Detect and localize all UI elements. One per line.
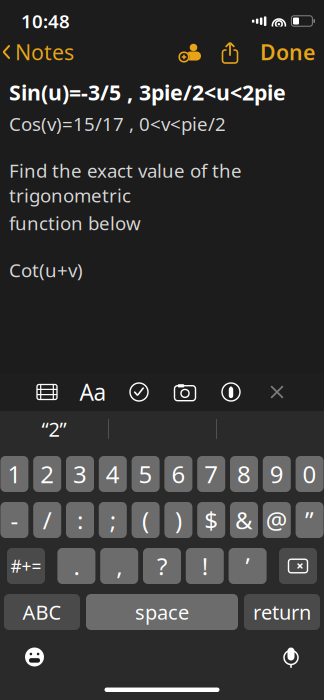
staticText: - <box>10 504 18 536</box>
button[interactable]: 0 <box>296 456 324 492</box>
button[interactable]: Share <box>210 38 250 66</box>
button[interactable]: 6 <box>164 456 192 492</box>
staticText: 9 <box>270 458 284 490</box>
button[interactable]: Markup <box>208 375 254 409</box>
staticText: Sin(u)=-3/5 , 3pie/2<u<2pie <box>9 78 286 106</box>
staticText: 3 <box>73 458 87 490</box>
staticText: 4 <box>106 458 120 490</box>
staticText: Cos(v)=15/17 , 0<v<pie/2 <box>9 111 226 136</box>
button[interactable]: 5 <box>132 456 160 492</box>
button[interactable]: @ <box>263 502 291 538</box>
button[interactable]: ) <box>164 502 192 538</box>
button[interactable]: 8 <box>230 456 258 492</box>
button[interactable]: $ <box>197 502 225 538</box>
button[interactable]: Camera <box>162 375 208 409</box>
button[interactable]: ? <box>143 548 181 584</box>
button[interactable]: , <box>100 548 138 584</box>
button[interactable]: Done <box>250 32 324 72</box>
button[interactable]: Close Keyboard <box>254 375 300 409</box>
staticText: & <box>235 504 253 536</box>
staticText: 8 <box>237 458 251 490</box>
staticText: . <box>73 550 79 582</box>
staticText: 6 <box>171 458 185 490</box>
staticText: 5 <box>139 458 153 490</box>
button[interactable]: 1 <box>0 456 28 492</box>
button[interactable]: Checklist <box>116 375 162 409</box>
staticText: 2 <box>40 458 54 490</box>
staticText: Aa <box>79 377 106 407</box>
button[interactable]: ” <box>296 502 324 538</box>
button[interactable]: Emoji <box>14 636 55 677</box>
staticText: Done <box>260 38 315 66</box>
button[interactable]: 9 <box>263 456 291 492</box>
staticText: ? <box>157 550 167 582</box>
staticText: Notes <box>15 38 74 66</box>
button[interactable]: ! <box>186 548 224 584</box>
staticText: $ <box>204 504 218 536</box>
button[interactable]: #+= <box>7 548 45 584</box>
staticText: Find the exact value of the trigonometri… <box>9 158 242 208</box>
button[interactable]: Insert Table <box>24 375 70 409</box>
button[interactable]: ; <box>99 502 127 538</box>
button[interactable]: Notes <box>0 32 74 72</box>
staticText: space <box>135 599 189 625</box>
staticText: function below <box>9 211 141 235</box>
staticText: ! <box>202 550 208 582</box>
staticText: return <box>253 599 311 625</box>
button[interactable]: Format <box>70 375 116 409</box>
button[interactable]: . <box>57 548 95 584</box>
staticText: ) <box>175 504 182 536</box>
staticText: , <box>116 550 122 582</box>
staticText: #+= <box>10 554 41 577</box>
staticText: 10:48 <box>21 9 70 33</box>
button[interactable]: - <box>0 502 28 538</box>
button[interactable]: ( <box>132 502 160 538</box>
button[interactable]: ’ <box>229 548 267 584</box>
staticText: Cot(u+v) <box>9 257 83 282</box>
button[interactable]: return <box>244 594 320 630</box>
button[interactable]: Add People <box>172 37 210 67</box>
staticText: “2” <box>41 416 66 442</box>
button[interactable]: “2” <box>0 411 108 447</box>
staticText: ( <box>142 504 149 536</box>
staticText: 1 <box>7 458 21 490</box>
button[interactable]: Dictation <box>272 635 310 679</box>
staticText: ABC <box>22 599 61 625</box>
staticText: ; <box>110 504 116 536</box>
staticText: / <box>43 504 52 536</box>
button[interactable]: 3 <box>66 456 94 492</box>
button[interactable]: / <box>33 502 61 538</box>
button[interactable]: & <box>230 502 258 538</box>
button[interactable]: Delete <box>279 548 317 584</box>
button[interactable]: 4 <box>99 456 127 492</box>
staticText: 0 <box>303 458 317 490</box>
staticText: 7 <box>204 458 218 490</box>
button[interactable]: ABC <box>4 594 80 630</box>
button[interactable]: : <box>66 502 94 538</box>
button[interactable]: 7 <box>197 456 225 492</box>
staticText: @ <box>266 504 288 536</box>
button[interactable]: space <box>86 594 238 630</box>
staticText: : <box>77 504 83 536</box>
staticText: ” <box>305 504 314 536</box>
button[interactable]: 2 <box>33 456 61 492</box>
staticText: ’ <box>246 550 250 582</box>
